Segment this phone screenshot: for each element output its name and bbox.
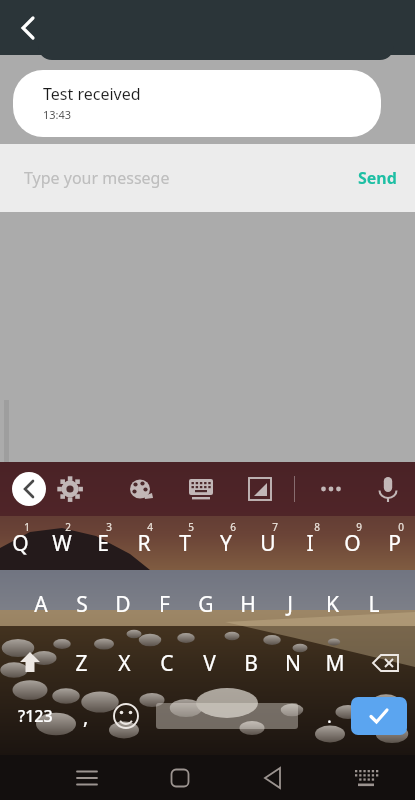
button[interactable]: Enter (351, 697, 407, 735)
staticText: 2 (65, 520, 71, 534)
staticText: V (203, 649, 216, 678)
staticText: 13:43 (43, 107, 72, 122)
button[interactable]: Comma (68, 690, 104, 742)
staticText: Send (358, 167, 397, 189)
button[interactable]: G (185, 584, 227, 624)
button[interactable]: Keyboard layout (179, 467, 223, 511)
staticText: 4 (147, 520, 153, 534)
button[interactable]: Settings (48, 467, 92, 511)
button[interactable]: Send (358, 152, 397, 204)
staticText: M (325, 649, 345, 678)
button[interactable]: 8 (289, 520, 331, 560)
button[interactable]: V (188, 642, 230, 684)
staticText: Test received (43, 83, 141, 105)
staticText: N (285, 649, 301, 678)
staticText: A (34, 590, 48, 619)
staticText: K (326, 590, 339, 619)
button[interactable]: B (230, 642, 272, 684)
button[interactable]: Back (251, 756, 295, 800)
staticText: I (306, 529, 314, 558)
staticText: Y (220, 529, 232, 558)
button[interactable]: 5 (164, 520, 205, 560)
button[interactable]: Back (6, 6, 50, 50)
staticText: P (388, 529, 401, 558)
button[interactable]: Recent apps (65, 756, 109, 800)
button[interactable]: Close keyboard toolbar (12, 472, 46, 506)
staticText: 5 (188, 520, 194, 534)
staticText: Q (12, 529, 29, 558)
staticText: X (118, 649, 131, 678)
staticText: 8 (314, 520, 320, 534)
button[interactable]: Shift (0, 642, 60, 684)
button[interactable]: M (314, 642, 356, 684)
button[interactable]: Z (60, 642, 103, 684)
staticText: B (244, 649, 258, 678)
staticText: 0 (398, 520, 404, 534)
staticText: D (115, 590, 131, 619)
button[interactable]: 1 (0, 520, 41, 560)
staticText: 9 (356, 520, 362, 534)
button[interactable]: Emoji (105, 695, 147, 737)
button[interactable]: D (102, 584, 143, 624)
button[interactable]: H (227, 584, 269, 624)
button[interactable]: Resize keyboard (238, 467, 282, 511)
button[interactable]: Home (158, 756, 202, 800)
staticText: 7 (272, 520, 278, 534)
staticText: , (83, 703, 89, 730)
button[interactable]: Theme (118, 467, 162, 511)
staticText: H (240, 590, 256, 619)
button[interactable]: 3 (82, 520, 123, 560)
button[interactable]: Space (156, 703, 298, 729)
staticText: 3 (106, 520, 112, 534)
button[interactable]: 0 (373, 520, 415, 560)
button[interactable]: 7 (247, 520, 289, 560)
button[interactable]: Type your messege (12, 153, 302, 203)
button[interactable]: 4 (123, 520, 164, 560)
staticText: W (52, 529, 72, 558)
staticText: E (97, 529, 109, 558)
staticText: . (327, 704, 332, 729)
staticText: J (287, 590, 293, 619)
button[interactable]: Hide keyboard (344, 756, 388, 800)
button[interactable]: K (311, 584, 353, 624)
button[interactable]: More options (309, 467, 353, 511)
button[interactable]: Test received (13, 70, 381, 137)
staticText: F (159, 590, 170, 619)
button[interactable]: 9 (331, 520, 373, 560)
staticText: 6 (230, 520, 236, 534)
button[interactable]: Period (312, 690, 346, 742)
button[interactable]: A (20, 584, 61, 624)
staticText: Type your messege (24, 167, 170, 189)
button[interactable]: Backspace (356, 642, 415, 684)
button[interactable]: F (143, 584, 185, 624)
button[interactable]: C (146, 642, 188, 684)
button[interactable]: Voice input (366, 467, 410, 511)
button[interactable]: N (272, 642, 314, 684)
staticText: S (76, 590, 88, 619)
staticText: C (160, 649, 174, 678)
staticText: Z (75, 649, 88, 678)
staticText: 1 (24, 520, 30, 534)
button[interactable]: L (353, 584, 395, 624)
staticText: O (344, 529, 361, 558)
staticText: L (368, 590, 380, 619)
staticText: R (137, 529, 151, 558)
button[interactable]: X (103, 642, 146, 684)
staticText: T (179, 529, 191, 558)
button[interactable]: ?123 (6, 690, 64, 742)
button[interactable]: 2 (41, 520, 82, 560)
button[interactable]: S (61, 584, 102, 624)
staticText: G (198, 590, 214, 619)
staticText: U (260, 529, 276, 558)
button[interactable]: 6 (205, 520, 247, 560)
staticText: ?123 (18, 705, 53, 727)
button[interactable]: J (269, 584, 311, 624)
